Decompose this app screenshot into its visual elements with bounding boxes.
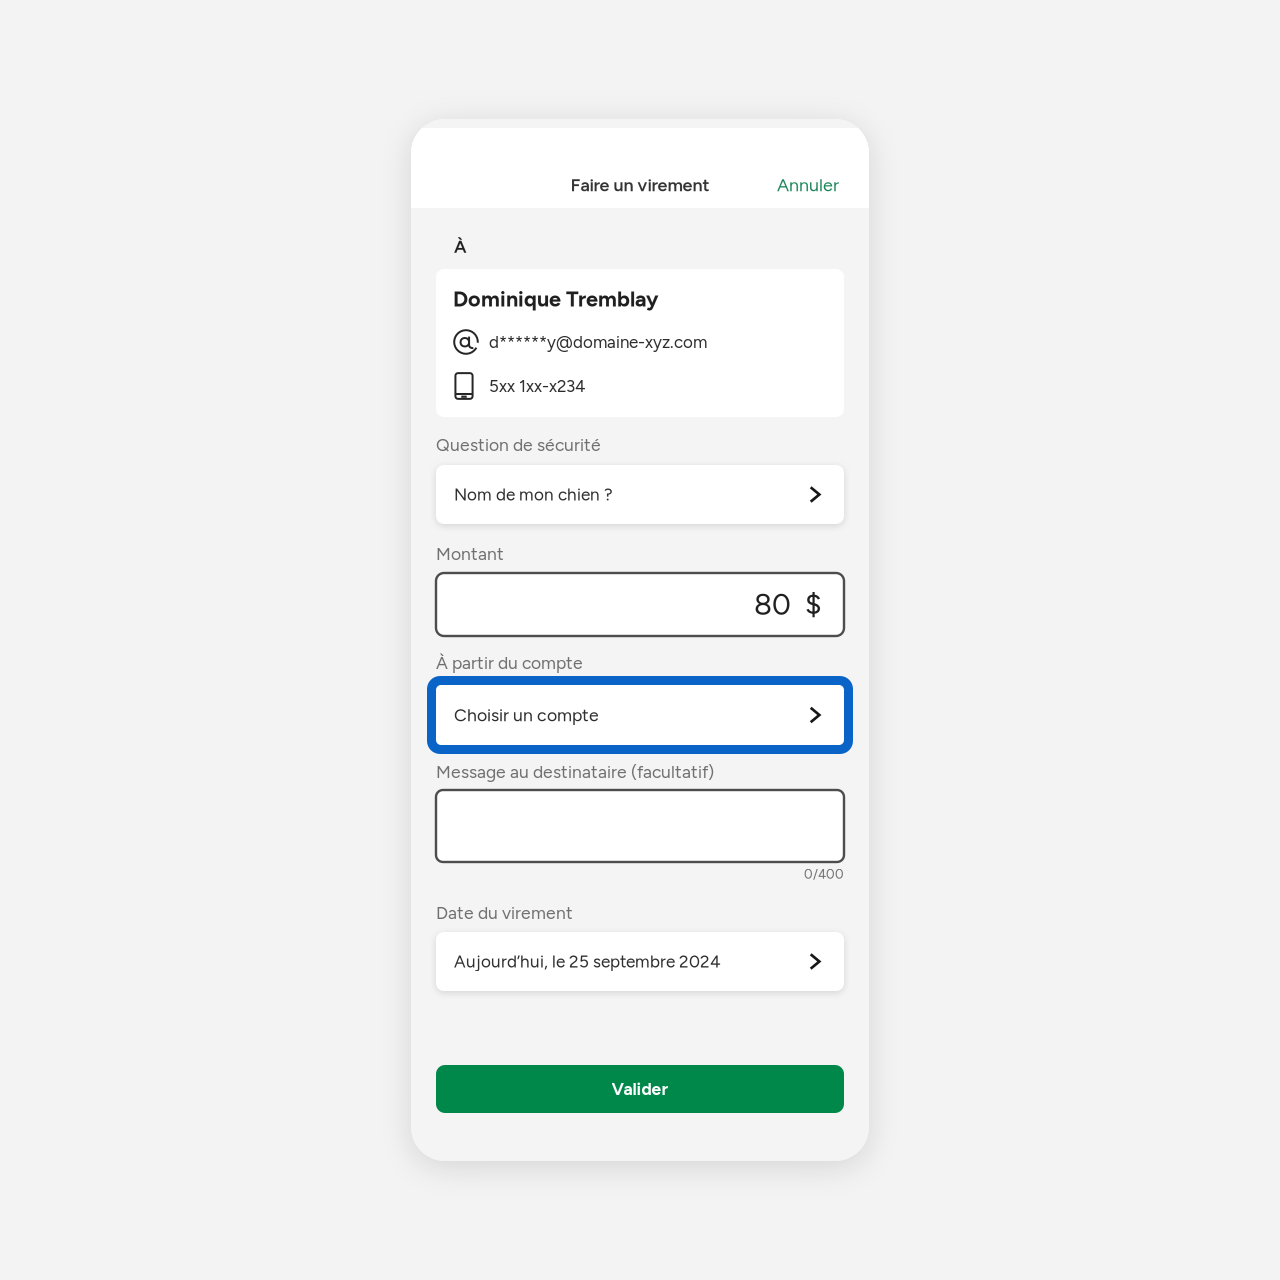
staticText: Nom de mon chien ? xyxy=(454,484,613,505)
button[interactable]: Annuler xyxy=(774,167,842,203)
staticText: Dominique Tremblay xyxy=(453,286,658,312)
staticText: Question de sécurité xyxy=(436,434,601,455)
button[interactable]: Valider xyxy=(436,1065,844,1113)
staticText: Annuler xyxy=(777,174,839,196)
button[interactable]: Message au destinataire xyxy=(436,790,844,862)
staticText: 0/400 xyxy=(804,866,844,882)
button[interactable]: Choisir un compte xyxy=(427,676,853,754)
staticText: À xyxy=(454,236,466,257)
staticText: Faire un virement xyxy=(570,174,709,196)
staticText: Valider xyxy=(611,1079,668,1099)
staticText: 5xx 1xx-x234 xyxy=(489,376,586,396)
staticText: Montant xyxy=(436,543,504,564)
button[interactable]: Nom de mon chien ? xyxy=(436,465,844,524)
button[interactable]: Aujourd’hui, le 25 septembre 2024 xyxy=(436,932,844,991)
staticText: Aujourd’hui, le 25 septembre 2024 xyxy=(454,951,721,972)
button[interactable]: 80 $ xyxy=(436,573,844,636)
staticText: Choisir un compte xyxy=(454,704,599,725)
staticText: Date du virement xyxy=(436,902,573,923)
staticText: 80 $ xyxy=(754,587,822,622)
staticText: À partir du compte xyxy=(436,652,583,673)
staticText: Message au destinataire (facultatif) xyxy=(436,761,714,782)
staticText: d******y@domaine-xyz.com xyxy=(489,332,707,352)
